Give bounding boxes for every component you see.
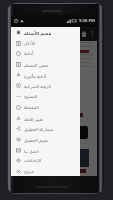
button[interactable]: الإعدادات	[11, 155, 80, 166]
staticText: اتصل بنا	[24, 148, 39, 154]
staticText: الرقية الشرعية	[24, 83, 52, 89]
staticText: مشاركة التطبيق	[24, 126, 54, 132]
button[interactable]: الرقية الشرعية	[11, 80, 80, 91]
staticText: خروج	[24, 169, 35, 174]
staticText: التسبيح	[24, 94, 38, 99]
staticText: الإعدادات	[24, 158, 42, 163]
other: Home	[81, 31, 87, 37]
staticText: أدعية	[24, 51, 34, 56]
button[interactable]: المفضلة	[11, 102, 80, 113]
staticText: قسم الأسئلة	[24, 30, 52, 36]
staticText: الأذكار	[24, 41, 36, 46]
button[interactable]: حصن المسلم	[11, 59, 80, 70]
button[interactable]: More options	[92, 31, 93, 37]
button[interactable]: الأذكار	[11, 38, 80, 49]
button[interactable]: أدعية	[11, 48, 80, 59]
button[interactable]: مشاركة التطبيق	[11, 123, 80, 134]
staticText: 9:38 PM	[79, 18, 95, 24]
staticText: حصن المسلم	[24, 62, 49, 68]
button[interactable]: أدعية مأثورة	[11, 70, 80, 81]
button[interactable]: تغيير الخط	[11, 113, 80, 124]
staticText: المفضلة	[24, 105, 39, 110]
button[interactable]: اتصل بنا	[11, 145, 80, 156]
button[interactable]: خروج	[11, 166, 80, 176]
staticText: تغيير الخط	[24, 116, 44, 122]
staticText: أدعية مأثورة	[24, 73, 47, 79]
button[interactable]: قسم الأسئلة	[11, 27, 80, 38]
button[interactable]: التسبيح	[11, 91, 80, 102]
button[interactable]: تقييم التطبيق	[11, 134, 80, 145]
staticText: تقييم التطبيق	[24, 137, 48, 143]
